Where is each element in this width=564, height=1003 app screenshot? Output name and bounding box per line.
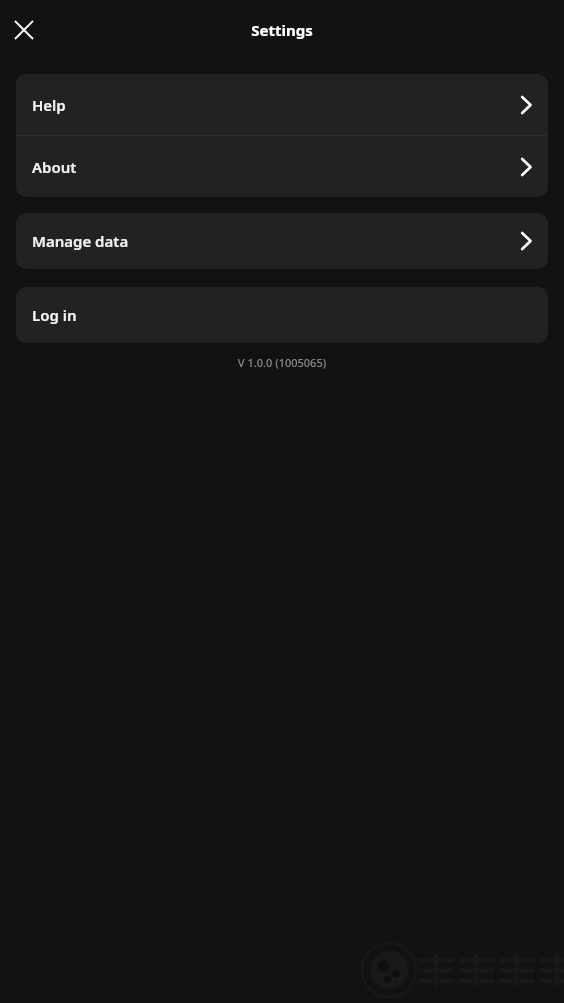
staticText: V 1.0.0 (1005065) <box>0 355 564 370</box>
staticText: Manage data <box>32 231 129 251</box>
staticText: Settings <box>251 20 313 40</box>
staticText: About <box>32 157 77 177</box>
button[interactable]: Log in <box>16 287 548 343</box>
button[interactable]: Close <box>8 14 40 46</box>
staticText: Help <box>32 95 66 115</box>
button[interactable]: Help <box>16 74 548 135</box>
staticText: Log in <box>32 305 77 325</box>
button[interactable]: Manage data <box>16 213 548 269</box>
button[interactable]: About <box>16 136 548 197</box>
